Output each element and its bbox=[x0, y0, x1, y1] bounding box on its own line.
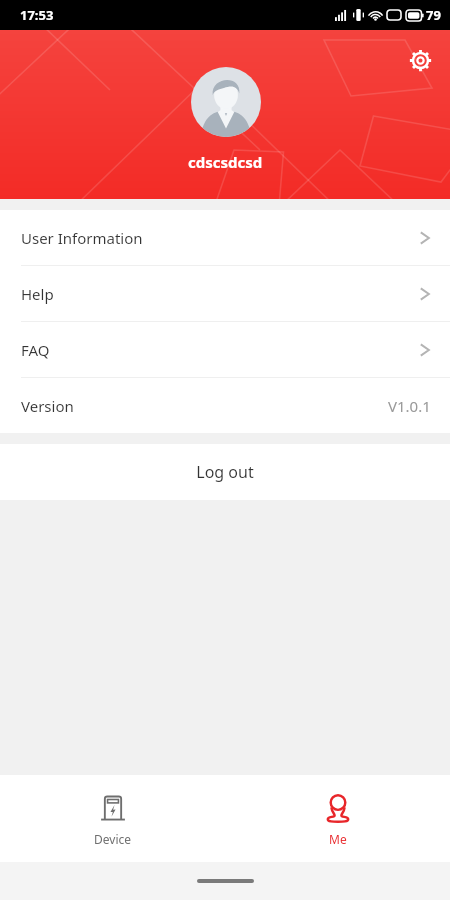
staticText: cdscsdcsd bbox=[188, 152, 263, 172]
button[interactable]: FAQ bbox=[0, 322, 450, 378]
staticText: User Information bbox=[21, 228, 143, 248]
button[interactable]: Version bbox=[0, 378, 450, 433]
staticText: Me bbox=[329, 831, 347, 847]
staticText: Help bbox=[21, 284, 54, 304]
staticText: FAQ bbox=[21, 340, 50, 360]
button[interactable]: Settings bbox=[402, 42, 438, 78]
button[interactable]: Help bbox=[0, 266, 450, 322]
button[interactable]: User Information bbox=[0, 210, 450, 266]
staticText: Version bbox=[21, 396, 74, 416]
button[interactable]: Me bbox=[225, 783, 450, 855]
staticText: 17:53 bbox=[20, 6, 54, 24]
staticText: 79 bbox=[426, 6, 441, 24]
staticText: Device bbox=[94, 831, 132, 847]
staticText: V1.0.1 bbox=[388, 396, 431, 416]
button[interactable]: Device bbox=[0, 783, 225, 855]
staticText: Log out bbox=[196, 461, 254, 483]
button[interactable]: Log out bbox=[0, 444, 450, 500]
